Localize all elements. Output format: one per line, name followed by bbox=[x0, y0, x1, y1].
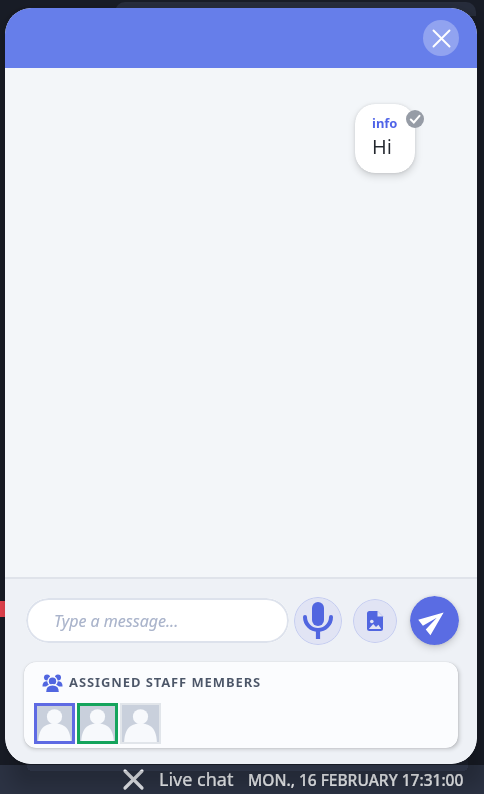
button[interactable] bbox=[120, 703, 161, 744]
button[interactable] bbox=[423, 20, 459, 56]
button[interactable]: Type a message... bbox=[26, 598, 289, 643]
button[interactable] bbox=[410, 596, 459, 645]
staticText: ASSIGNED STAFF MEMBERS bbox=[69, 673, 262, 691]
button[interactable] bbox=[77, 703, 118, 744]
staticText: Live chat bbox=[159, 767, 234, 792]
staticText: Type a message... bbox=[54, 610, 179, 632]
button[interactable]: Live chat bbox=[0, 765, 484, 794]
button[interactable]: info bbox=[372, 114, 398, 160]
button[interactable] bbox=[294, 597, 342, 645]
staticText: MON., 16 FEBRUARY 17:31:00 bbox=[248, 769, 464, 790]
staticText: Hi bbox=[372, 133, 392, 160]
staticText: info bbox=[372, 114, 398, 132]
button[interactable] bbox=[34, 703, 75, 744]
button[interactable] bbox=[353, 599, 397, 643]
